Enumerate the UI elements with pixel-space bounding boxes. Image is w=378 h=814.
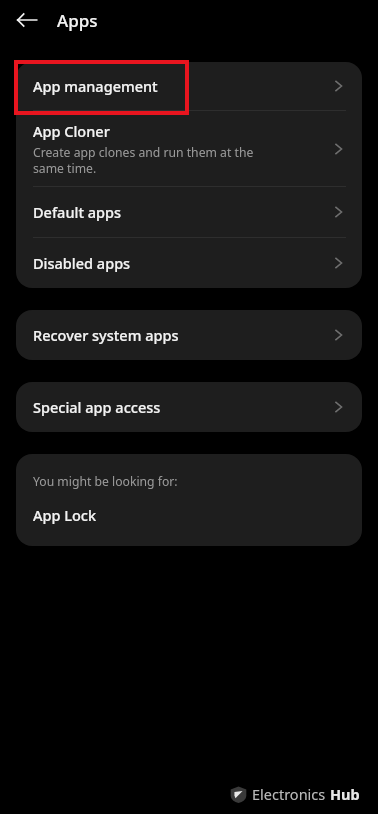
button[interactable]: Special app access xyxy=(16,382,362,432)
staticText: You might be looking for: xyxy=(33,473,178,490)
staticText: Apps xyxy=(57,9,98,32)
button[interactable]: App management xyxy=(16,62,362,110)
staticText: App Cloner xyxy=(33,121,110,141)
button[interactable]: App Lock xyxy=(16,490,362,540)
staticText: Special app access xyxy=(33,397,161,417)
button[interactable]: Recover system apps xyxy=(16,310,362,360)
staticText: Recover system apps xyxy=(33,325,179,345)
staticText: Electronics xyxy=(252,784,330,804)
staticText: Disabled apps xyxy=(33,253,131,273)
button[interactable]: Disabled apps xyxy=(16,238,362,288)
button[interactable]: App Cloner xyxy=(16,111,362,186)
staticText: App Lock xyxy=(33,505,97,525)
staticText: Create app clones and run them at the sa… xyxy=(33,144,254,176)
staticText: Default apps xyxy=(33,202,122,222)
button[interactable]: Default apps xyxy=(16,187,362,237)
staticText: App management xyxy=(33,76,158,96)
staticText: Hub xyxy=(330,784,360,804)
button[interactable]: Back xyxy=(12,5,42,35)
